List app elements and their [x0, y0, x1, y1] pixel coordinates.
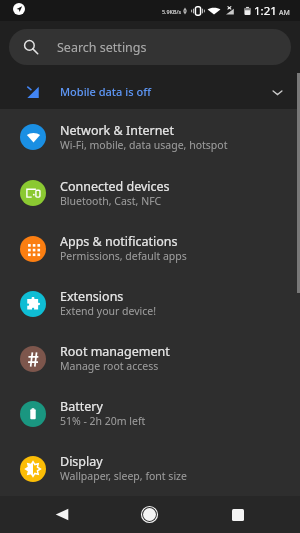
staticText: 51% - 2h 20m left: [60, 414, 146, 428]
staticText: Permissions, default apps: [60, 249, 187, 263]
button[interactable]: Extensions: [0, 276, 300, 331]
button[interactable]: Back: [44, 497, 79, 532]
button[interactable]: Recent apps: [220, 497, 255, 532]
staticText: Extensions: [60, 288, 124, 305]
staticText: Root management: [60, 343, 170, 360]
button[interactable]: Mobile data is off: [0, 73, 300, 109]
button[interactable]: Home: [132, 497, 167, 532]
staticText: Search settings: [57, 39, 147, 56]
staticText: Mobile data is off: [60, 84, 151, 99]
staticText: 5.9KB/s: [162, 8, 182, 15]
staticText: Network & Internet: [60, 122, 174, 139]
staticText: 1:21: [254, 3, 277, 19]
button[interactable]: Network & Internet: [0, 109, 300, 165]
staticText: Apps & notifications: [60, 233, 178, 250]
button[interactable]: Apps & notifications: [0, 221, 300, 276]
button[interactable]: Display: [0, 441, 300, 496]
staticText: Bluetooth, Cast, NFC: [60, 194, 162, 208]
staticText: Battery: [60, 398, 103, 415]
staticText: Wallpaper, sleep, font size: [60, 469, 187, 483]
button[interactable]: Root management: [0, 331, 300, 386]
staticText: Display: [60, 453, 103, 470]
staticText: Wi-Fi, mobile, data usage, hotspot: [60, 138, 228, 152]
button[interactable]: Battery: [0, 386, 300, 441]
staticText: Connected devices: [60, 178, 170, 195]
staticText: Extend your device!: [60, 304, 157, 318]
button[interactable]: Connected devices: [0, 165, 300, 221]
staticText: Manage root access: [60, 359, 159, 373]
button[interactable]: Search settings: [9, 29, 291, 65]
staticText: AM: [279, 8, 290, 18]
